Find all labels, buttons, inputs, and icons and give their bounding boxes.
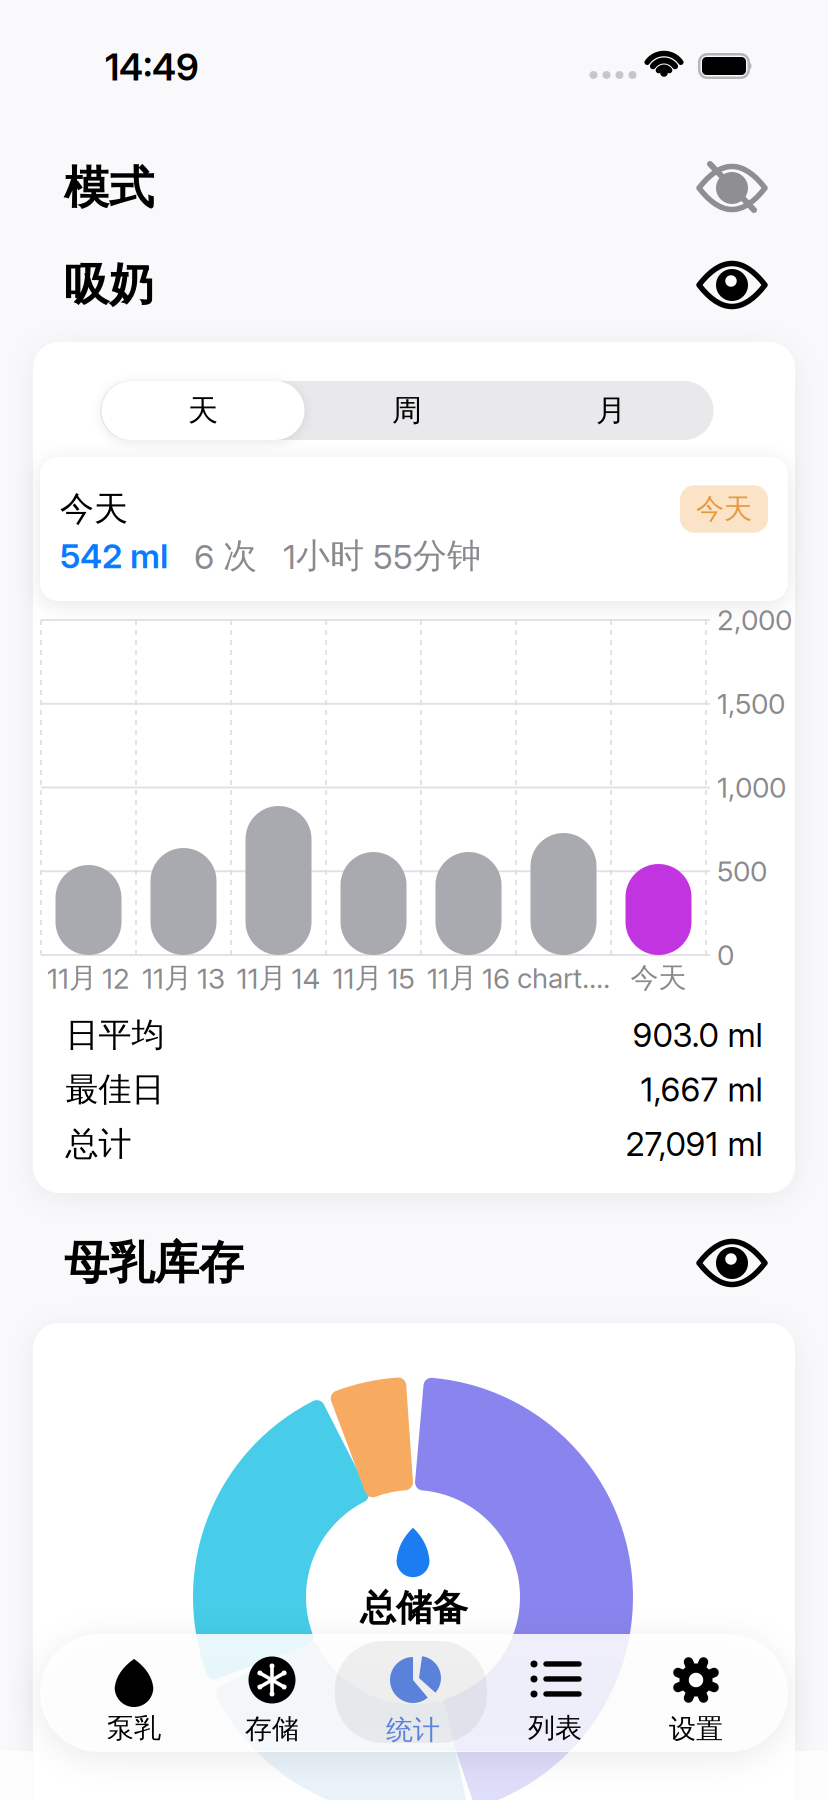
button[interactable]: 今天: [40, 457, 788, 601]
staticText: 14:49: [105, 45, 199, 89]
staticText: 存储: [245, 1712, 299, 1746]
staticText: 11月 13: [142, 960, 225, 996]
staticText: 列表: [528, 1711, 582, 1745]
button[interactable]: 吸奶: [64, 256, 764, 314]
staticText: 27,091 ml: [625, 1124, 762, 1164]
staticText: 日平均: [65, 1014, 164, 1056]
staticText: 今天: [630, 960, 686, 996]
staticText: 903.0 ml: [632, 1015, 762, 1055]
staticText: 500: [717, 854, 767, 888]
button[interactable]: 月: [509, 381, 712, 440]
staticText: 11月 12: [47, 960, 130, 996]
button[interactable]: 天: [101, 381, 304, 440]
staticText: 天: [188, 392, 218, 429]
staticText: 6 次: [194, 535, 257, 577]
button[interactable]: 统计: [338, 1643, 488, 1759]
button[interactable]: 模式: [64, 159, 764, 217]
staticText: 模式: [64, 160, 154, 216]
staticText: 母乳库存: [64, 1235, 244, 1291]
staticText: 542 ml: [60, 535, 168, 576]
button[interactable]: 周: [305, 381, 508, 440]
staticText: 泵乳: [107, 1711, 161, 1745]
staticText: 1小时 55分钟: [283, 535, 481, 577]
staticText: 统计: [386, 1713, 440, 1747]
staticText: 吸奶: [64, 257, 154, 313]
button[interactable]: 泵乳: [64, 1643, 204, 1759]
button[interactable]: 列表: [485, 1643, 625, 1759]
staticText: chart....: [517, 961, 610, 995]
staticText: 1,500: [717, 687, 785, 721]
staticText: 11月 16: [427, 960, 510, 996]
staticText: 2,000: [717, 603, 792, 637]
staticText: 今天: [60, 488, 128, 530]
staticText: 最佳日: [65, 1069, 164, 1110]
staticText: 总储备: [360, 1585, 468, 1631]
staticText: 1,667 ml: [640, 1069, 762, 1109]
staticText: 今天: [696, 491, 752, 527]
staticText: 设置: [669, 1712, 723, 1746]
staticText: 周: [392, 392, 422, 429]
staticText: 月: [596, 392, 626, 429]
staticText: 1,000: [717, 771, 786, 804]
button[interactable]: 母乳库存: [64, 1234, 764, 1292]
staticText: 总计: [65, 1123, 131, 1165]
staticText: 11月 14: [236, 960, 320, 996]
button[interactable]: 设置: [626, 1643, 766, 1759]
staticText: 0: [717, 938, 734, 972]
staticText: 11月 15: [332, 960, 414, 996]
button[interactable]: 存储: [202, 1643, 342, 1759]
